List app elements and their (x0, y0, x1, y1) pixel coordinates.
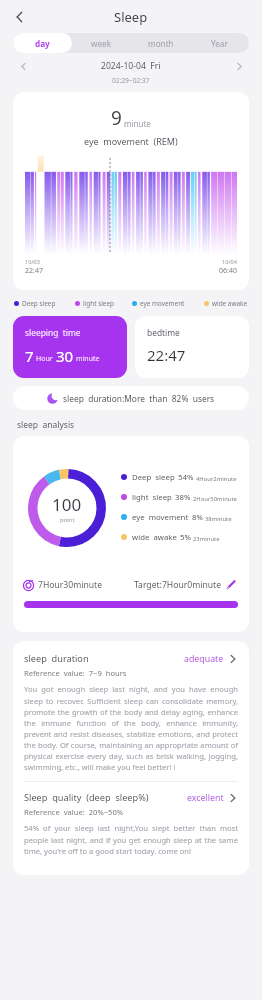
staticText: 2Hour50minute (193, 495, 237, 503)
staticText: bedtime (147, 327, 180, 338)
staticText: 8% (192, 512, 203, 523)
button[interactable]: Previous day (16, 59, 30, 73)
staticText: 10/04 (222, 258, 237, 266)
button[interactable]: Next day (232, 59, 246, 73)
staticText: eye movement (132, 512, 189, 523)
staticText: Deep sleep (132, 472, 175, 483)
button[interactable]: sleep duration:More than 82% users (13, 386, 249, 410)
button[interactable]: Sleep quality (deep sleep%) (24, 791, 238, 804)
staticText: point (60, 516, 75, 524)
staticText: sleep analysis (17, 419, 75, 431)
staticText: 2024-10-04 Fri (101, 60, 161, 72)
staticText: minute (124, 118, 151, 129)
staticText: 38minute (205, 515, 232, 523)
button[interactable]: sleeping time (13, 316, 127, 378)
staticText: day (35, 38, 50, 49)
staticText: 100 (52, 493, 82, 516)
staticText: light sleep (132, 492, 172, 503)
staticText: month (148, 38, 174, 49)
staticText: Year (211, 38, 228, 49)
staticText: 5% (180, 532, 191, 543)
staticText: 22:47 (25, 266, 43, 276)
staticText: 54% (178, 472, 194, 483)
staticText: Sleep quality (deep sleep%) (24, 791, 149, 804)
button[interactable]: bedtime (135, 316, 249, 378)
staticText: eye movement (REM) (84, 135, 178, 147)
staticText: 02:29~02:37 (112, 76, 150, 85)
staticText: 38% (175, 492, 191, 503)
staticText: 7 (25, 346, 34, 366)
staticText: minute (76, 354, 100, 364)
staticText: Reference value: 20%~50% (24, 807, 124, 817)
staticText: week (91, 38, 112, 49)
staticText: Sleep (114, 8, 148, 26)
button[interactable]: month (131, 33, 190, 53)
staticText: wide awake (132, 532, 177, 543)
staticText: 23minute (193, 535, 220, 543)
staticText: wide awake (212, 299, 248, 308)
staticText: 06:40 (219, 266, 237, 276)
staticText: 54% of your sleep last night,You slept b… (24, 823, 238, 856)
button[interactable]: Year (190, 33, 249, 53)
staticText: light sleep (83, 299, 114, 308)
staticText: 4Hour2minute (196, 475, 237, 483)
button[interactable]: Edit target (225, 579, 237, 591)
staticText: adequate (184, 653, 224, 665)
button[interactable]: week (72, 33, 131, 53)
staticText: sleep duration (24, 652, 89, 665)
staticText: sleep duration:More than 82% users (63, 393, 215, 404)
staticText: Target:7Hour0minute (134, 579, 221, 591)
button[interactable]: day (13, 33, 72, 53)
staticText: 10/03 (25, 258, 40, 266)
staticText: 22:47 (147, 345, 186, 365)
staticText: 7Hour30minute (38, 579, 102, 591)
staticText: sleeping time (25, 327, 81, 338)
staticText: Hour (36, 354, 53, 364)
button[interactable]: Back (8, 5, 32, 29)
staticText: You got enough sleep last night, and you… (24, 684, 238, 772)
staticText: 9 (111, 105, 122, 131)
staticText: excellent (187, 792, 224, 804)
staticText: Reference value: 7~9 hours (24, 668, 127, 678)
staticText: Deep sleep (22, 299, 56, 308)
staticText: 30 (56, 346, 74, 366)
button[interactable]: sleep duration (24, 652, 238, 665)
staticText: eye movement (140, 299, 185, 308)
